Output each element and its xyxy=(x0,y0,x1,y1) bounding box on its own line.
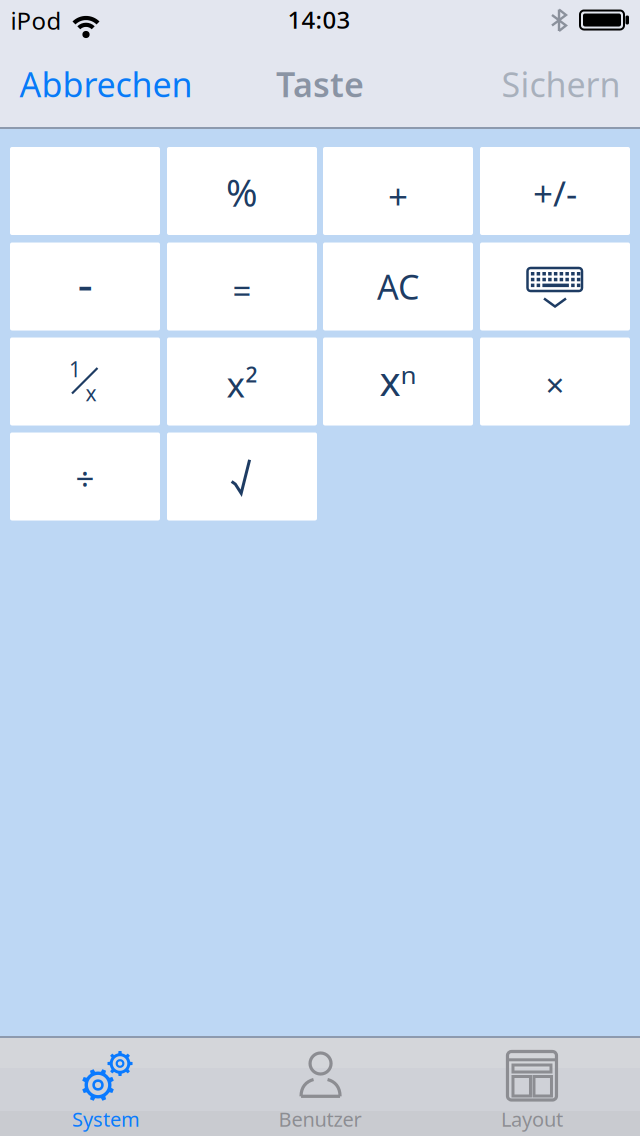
button[interactable]: Abbrechen xyxy=(19,61,192,107)
staticText: ÷ xyxy=(75,455,94,500)
staticText: 1 xyxy=(69,355,81,383)
staticText: Benutzer xyxy=(278,1105,361,1133)
staticText: × xyxy=(545,362,564,407)
button[interactable]: Benutzer xyxy=(213,1038,427,1136)
button[interactable]: - xyxy=(10,242,160,330)
staticText: Taste xyxy=(276,61,364,107)
button[interactable]: System xyxy=(0,1038,213,1136)
staticText: Abbrechen xyxy=(19,61,192,107)
button[interactable]: Tastatur ausblenden xyxy=(480,242,630,330)
staticText: AC xyxy=(377,263,419,310)
staticText: Sichern xyxy=(501,61,620,107)
button[interactable]: AC xyxy=(323,242,473,330)
button[interactable]: +/- xyxy=(480,147,630,235)
staticText: x² xyxy=(226,360,257,408)
button[interactable]: Quadratwurzel xyxy=(167,432,317,520)
staticText: % xyxy=(226,166,258,218)
staticText: +/- xyxy=(533,169,577,217)
staticText: = xyxy=(232,267,251,312)
button[interactable]: Sichern xyxy=(501,61,620,107)
staticText: iPod xyxy=(10,4,61,37)
button[interactable]: 1 xyxy=(10,337,160,425)
staticText: System xyxy=(72,1105,140,1133)
button[interactable]: % xyxy=(167,147,317,235)
button[interactable]: + xyxy=(323,147,473,235)
staticText: xⁿ xyxy=(379,353,416,408)
button[interactable]: x² xyxy=(167,337,317,425)
button[interactable]: Layout xyxy=(427,1038,640,1136)
staticText: - xyxy=(77,250,92,316)
staticText: Layout xyxy=(501,1105,563,1133)
staticText: x xyxy=(85,379,96,407)
button[interactable]: = xyxy=(167,242,317,330)
staticText: + xyxy=(388,172,408,220)
staticText: 14:03 xyxy=(287,3,350,36)
button[interactable]: × xyxy=(480,337,630,425)
button[interactable]: xⁿ xyxy=(323,337,473,425)
button[interactable]: ÷ xyxy=(10,432,160,520)
